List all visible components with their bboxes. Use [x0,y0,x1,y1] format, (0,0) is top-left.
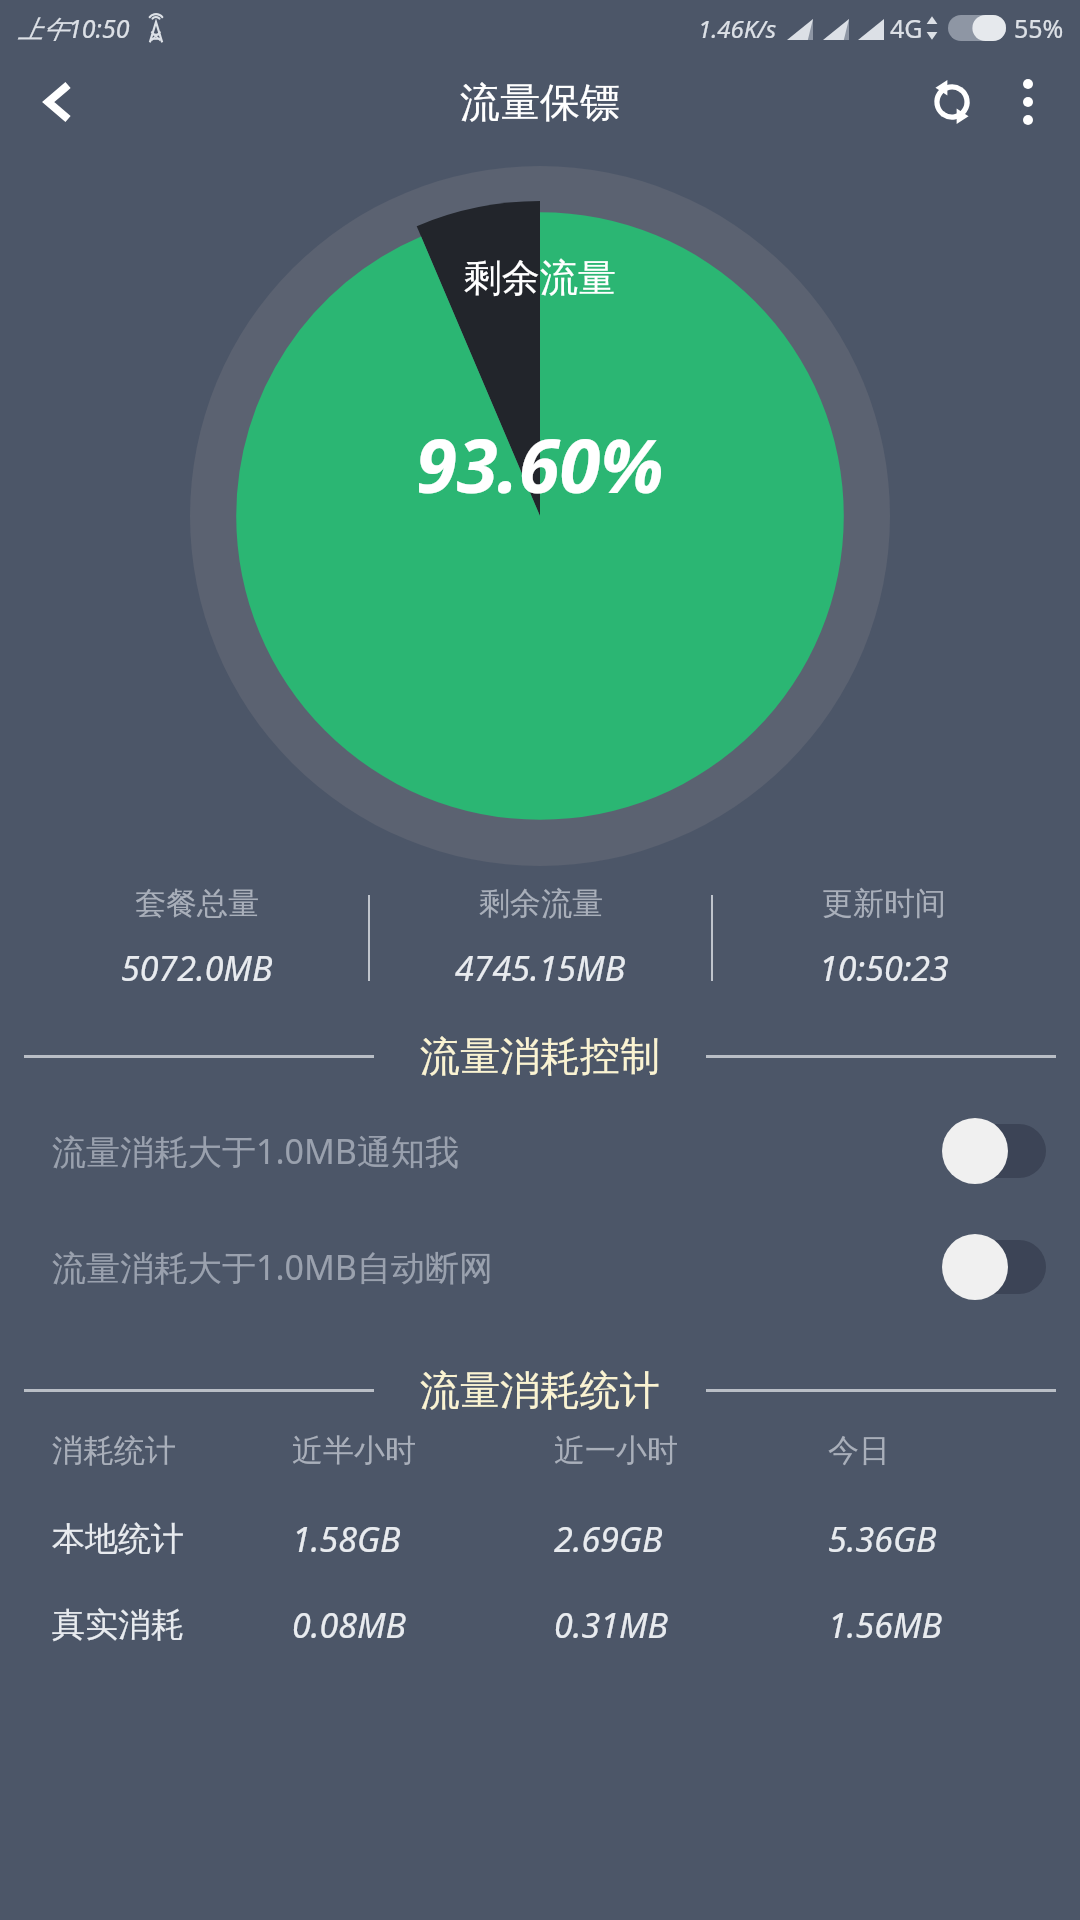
staticText: 更新时间 [822,884,946,923]
staticText: 今日 [828,1431,1056,1470]
staticText: 4745.15MB [455,945,626,991]
staticText: 55% [1014,11,1064,45]
staticText: 10:50:23 [819,945,949,991]
staticText: 流量消耗控制 [420,1031,660,1081]
staticText: 2.69GB [554,1516,828,1562]
staticText: 1.58GB [292,1516,554,1562]
staticText: 流量消耗统计 [420,1365,660,1415]
staticText: 上午10:50 [18,11,130,45]
staticText: 5.36GB [828,1516,1056,1562]
staticText: 本地统计 [52,1518,292,1560]
staticText: 0.08MB [292,1602,554,1648]
staticText: 流量消耗大于1.0MB自动断网 [52,1244,942,1290]
button[interactable]: 流量消耗大于1.0MB自动断网 [0,1219,1080,1315]
button[interactable]: Refresh [914,64,990,140]
staticText: 近半小时 [292,1431,554,1470]
button[interactable]: 流量消耗大于1.0MB通知我 [0,1103,1080,1199]
staticText: 套餐总量 [135,884,259,923]
staticText: 剩余流量 [479,884,603,923]
staticText: 4G [890,11,923,45]
staticText: 93.60% [416,414,664,515]
staticText: 流量消耗大于1.0MB通知我 [52,1128,942,1174]
staticText: 1.46K/s [698,12,777,45]
button[interactable]: More options [990,64,1066,140]
staticText: 近一小时 [554,1431,828,1470]
button[interactable]: Back [26,71,88,133]
staticText: 5072.0MB [121,945,273,991]
staticText: 剩余流量 [464,254,616,302]
staticText: 0.31MB [554,1602,828,1648]
staticText: 消耗统计 [52,1431,292,1470]
staticText: 真实消耗 [52,1604,292,1646]
staticText: 1.56MB [828,1602,1056,1648]
staticText: 流量保镖 [460,77,620,127]
